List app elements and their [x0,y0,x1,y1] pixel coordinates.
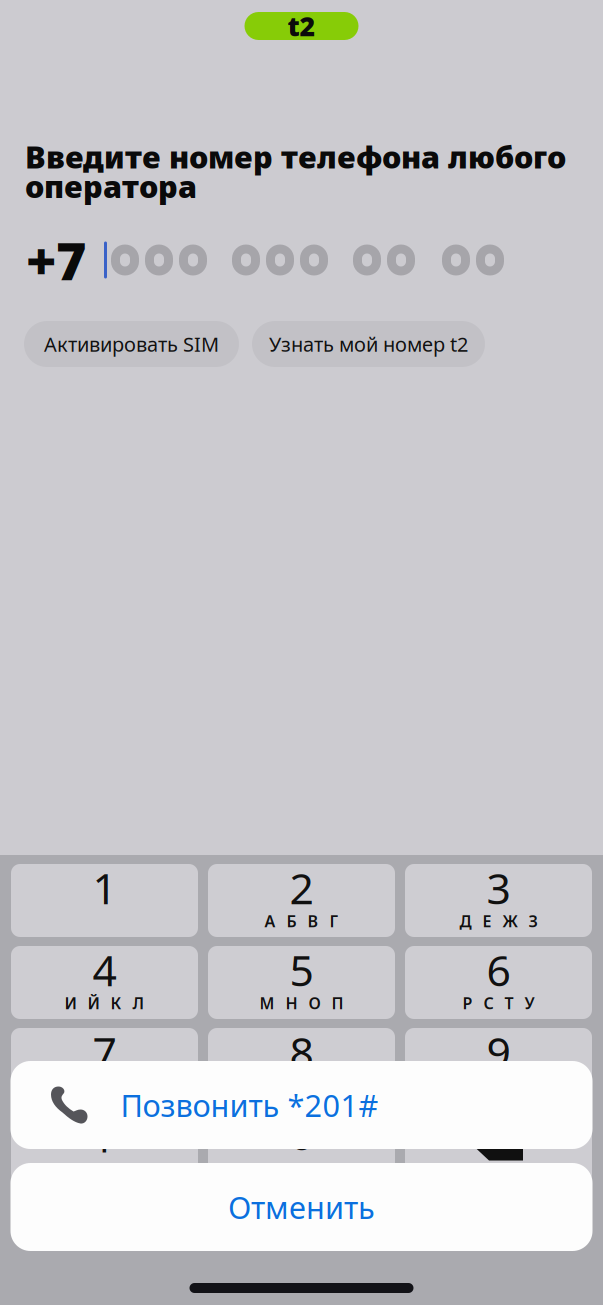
button[interactable]: Позвонить *201# [10,1061,592,1149]
staticText: Активировать SIM [44,331,219,357]
button[interactable]: 9 [405,1028,592,1101]
staticText: 1 [92,859,116,916]
button[interactable]: t2 [244,12,358,40]
staticText: 6 [486,941,510,998]
staticText: ДЕЖЗ [459,910,537,932]
staticText: ПРСТ [67,1074,141,1096]
staticText: РСТУ [462,992,534,1014]
button[interactable]: ∗ [11,1110,198,1183]
staticText: Узнать мой номер t2 [269,331,468,357]
button[interactable]: 6 [405,946,592,1019]
staticText: 3 [486,859,510,916]
button[interactable]: Отменить [10,1163,592,1251]
staticText: 7 [92,1023,116,1080]
staticText: оператора [25,166,197,206]
staticText: Введите номер телефона любого [25,136,566,177]
staticText: Позвонить *201# [120,1085,378,1125]
button[interactable]: 7 [11,1028,198,1101]
button[interactable]: 8 [208,1028,395,1101]
staticText: 0 [289,1105,313,1162]
staticText: МНОП [259,992,343,1014]
staticText: ИЙКЛ [64,992,144,1014]
button[interactable]: Delete [405,1110,592,1183]
button[interactable]: 5 [208,946,395,1019]
staticText: АБВГ [264,910,338,932]
staticText: 4 [92,941,116,998]
staticText: 8 [289,1023,313,1080]
button[interactable]: 2 [208,864,395,937]
button[interactable]: Узнать мой номер t2 [252,321,485,367]
staticText: Отменить [228,1187,375,1227]
staticText: t2 [287,8,315,44]
button[interactable]: 3 [405,864,592,937]
button[interactable]: 1 [11,864,198,937]
staticText: ∗ [86,1114,122,1162]
staticText: 9 [486,1023,510,1080]
button[interactable]: 4 [11,946,198,1019]
staticText: +7 [26,225,86,295]
staticText: 2 [289,859,313,916]
staticText: 5 [289,941,313,998]
button[interactable]: Активировать SIM [24,321,239,367]
staticText: + [297,1156,306,1178]
staticText: УФХЦ [262,1074,340,1096]
button[interactable]: 0 [208,1110,395,1183]
